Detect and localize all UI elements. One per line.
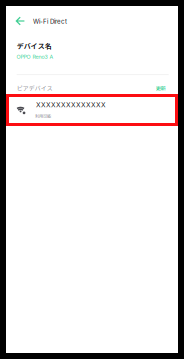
staticText: デバイス名 <box>17 41 52 51</box>
button[interactable]: XXXXXXXXXXXXXX <box>6 94 178 126</box>
button[interactable]: 更新 <box>154 84 165 92</box>
button[interactable]: Back <box>10 11 30 31</box>
staticText: XXXXXXXXXXXXXX <box>36 101 106 109</box>
staticText: ピアデバイス <box>17 84 53 92</box>
staticText: 更新 <box>155 84 165 92</box>
staticText: OPPO Reno3 A <box>16 54 53 60</box>
staticText: 利用可能 <box>35 113 51 119</box>
staticText: Wi-Fi Direct <box>33 18 67 25</box>
